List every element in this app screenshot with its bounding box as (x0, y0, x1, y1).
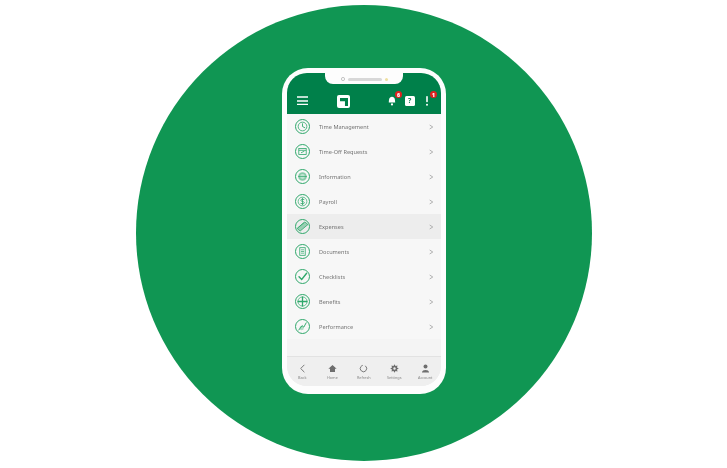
staticText: Back (298, 375, 307, 380)
button[interactable]: Benefits (287, 289, 441, 314)
button[interactable]: Checklists (287, 264, 441, 289)
button[interactable]: Menu (293, 92, 311, 110)
button[interactable]: Expenses (287, 214, 441, 239)
button[interactable]: Back (287, 357, 317, 386)
button[interactable]: Notifications (383, 92, 401, 110)
button[interactable]: Home (317, 357, 348, 386)
button[interactable]: Home logo (337, 95, 350, 108)
staticText: Payroll (319, 198, 429, 206)
staticText: Time-Off Requests (319, 148, 429, 156)
staticText: Time Management (319, 123, 429, 131)
button[interactable]: Performance (287, 314, 441, 339)
button[interactable]: Documents (287, 239, 441, 264)
staticText: Performance (319, 323, 429, 331)
staticText: Information (319, 173, 429, 181)
staticText: Expenses (319, 223, 429, 231)
staticText: Documents (319, 248, 429, 256)
button[interactable]: Information (287, 164, 441, 189)
button[interactable]: Help (401, 92, 419, 110)
staticText: Checklists (319, 273, 429, 281)
staticText: Account (418, 375, 433, 380)
button[interactable]: Time-Off Requests (287, 139, 441, 164)
staticText: 1 (432, 92, 435, 98)
staticText: Home (327, 375, 338, 380)
staticText: 6 (397, 92, 400, 98)
button[interactable]: Account (410, 357, 441, 386)
button[interactable]: Time Management (287, 114, 441, 139)
button[interactable]: Payroll (287, 189, 441, 214)
staticText: Benefits (319, 298, 429, 306)
staticText: ? (408, 96, 412, 106)
button[interactable]: More options (419, 93, 435, 109)
staticText: Refresh (357, 375, 371, 380)
button[interactable]: Settings (379, 357, 410, 386)
button[interactable]: Refresh (348, 357, 379, 386)
staticText: Settings (387, 375, 402, 380)
